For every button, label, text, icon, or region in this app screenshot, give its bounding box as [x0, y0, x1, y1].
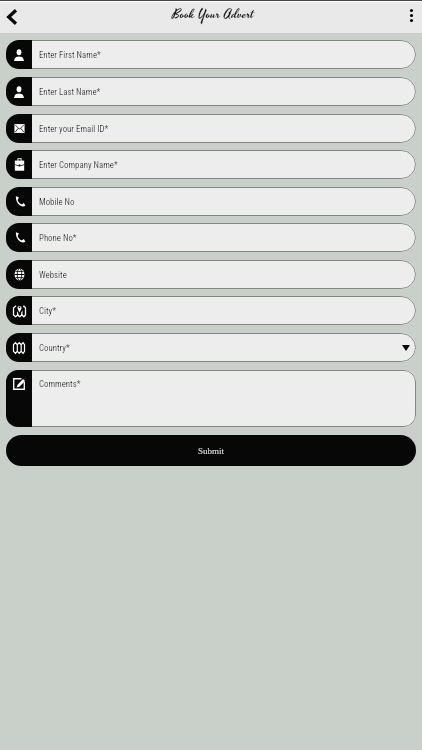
button[interactable]: Enter your Email ID*	[6, 114, 416, 143]
staticText: Submit	[198, 446, 225, 456]
button[interactable]: Phone No*	[6, 223, 416, 252]
button[interactable]: Country*	[6, 333, 416, 362]
button[interactable]: City*	[6, 296, 416, 325]
staticText: Comments*	[39, 379, 81, 389]
staticText: Mobile No	[39, 197, 75, 207]
button[interactable]: Enter First Name*	[6, 40, 416, 69]
button[interactable]: Mobile No	[6, 187, 416, 216]
staticText: Book Your Advert	[172, 5, 254, 25]
button[interactable]: Comments*	[6, 370, 416, 427]
staticText: City*	[39, 306, 57, 316]
staticText: Phone No*	[39, 233, 77, 243]
button[interactable]: Submit	[6, 435, 416, 466]
button[interactable]: Enter Last Name*	[6, 77, 416, 106]
button[interactable]: More options	[396, 2, 422, 33]
button[interactable]: Website	[6, 260, 416, 289]
staticText: Enter Company Name*	[39, 160, 118, 170]
staticText: Enter First Name*	[39, 50, 101, 60]
button[interactable]: Enter Company Name*	[6, 150, 416, 179]
staticText: Enter Last Name*	[39, 87, 101, 97]
staticText: Website	[39, 270, 67, 280]
staticText: Enter your Email ID*	[39, 124, 109, 134]
button[interactable]: Back	[0, 2, 26, 33]
staticText: Country*	[39, 343, 70, 353]
